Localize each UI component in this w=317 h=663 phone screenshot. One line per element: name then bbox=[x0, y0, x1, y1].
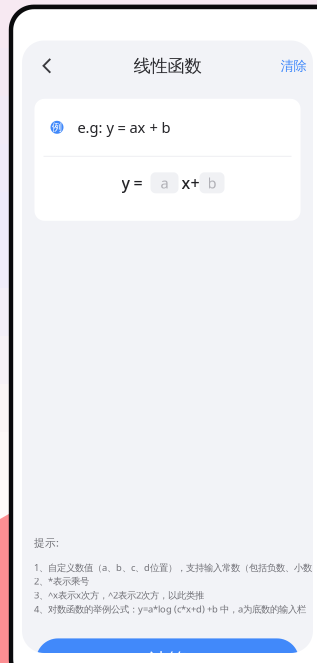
staticText: x+ bbox=[181, 172, 199, 193]
staticText: 4、对数函数的举例公式：y=a*log (c*x+d) +b 中，a为底数的输入… bbox=[34, 603, 306, 615]
staticText: 提示: bbox=[34, 535, 59, 550]
button[interactable]: 清除 bbox=[280, 53, 313, 79]
staticText: y = bbox=[121, 172, 142, 193]
staticText: 2、*表示乘号 bbox=[34, 575, 89, 587]
staticText: 1、自定义数值（a、b、c、d位置），支持输入常数（包括负数、小数） bbox=[34, 561, 317, 574]
staticText: 例 bbox=[51, 121, 62, 134]
button[interactable]: Back bbox=[31, 53, 63, 79]
staticText: b bbox=[207, 173, 216, 193]
staticText: 计算 bbox=[148, 649, 186, 663]
staticText: a bbox=[160, 173, 168, 193]
staticText: 3、^x表示x次方，^2表示2次方，以此类推 bbox=[34, 589, 204, 601]
staticText: 清除 bbox=[280, 58, 306, 74]
staticText: 线性函数 bbox=[133, 55, 201, 77]
button[interactable]: 计算 bbox=[36, 638, 299, 663]
staticText: e.g: y = ax + b bbox=[77, 118, 170, 137]
